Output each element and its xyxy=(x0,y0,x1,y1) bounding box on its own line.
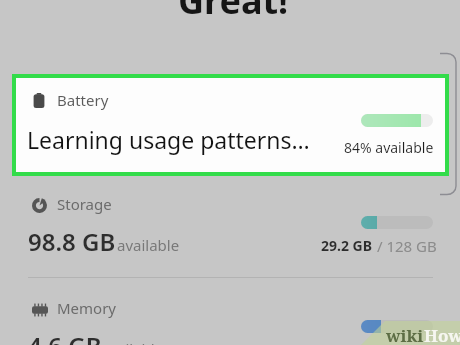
staticText: wiki xyxy=(386,324,424,345)
staticText: 4.6 GB xyxy=(28,329,102,345)
staticText: 29.2 GB xyxy=(321,236,373,255)
staticText: available xyxy=(117,235,180,255)
staticText: / 128 GB xyxy=(373,236,437,256)
staticText: 84% available xyxy=(344,138,434,157)
staticText: Memory xyxy=(57,298,117,318)
staticText: Battery xyxy=(57,90,109,110)
staticText: Storage xyxy=(57,194,112,214)
staticText: 84% available xyxy=(344,138,434,157)
button[interactable]: Battery xyxy=(12,74,449,176)
staticText: 98.8 GB xyxy=(28,225,116,258)
staticText: Learning usage patterns… xyxy=(27,124,310,155)
staticText: available xyxy=(101,339,164,345)
staticText: How xyxy=(424,324,460,345)
staticText: Battery xyxy=(57,90,109,110)
staticText: Great! xyxy=(178,0,289,25)
staticText: Learning usage patterns… xyxy=(27,124,310,155)
